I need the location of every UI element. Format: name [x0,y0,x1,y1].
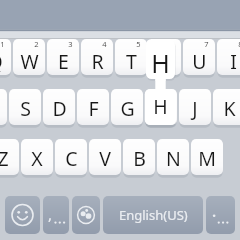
staticText: I [230,48,237,75]
staticText: 5 [136,39,141,49]
button[interactable]: A [0,89,7,127]
staticText: B [133,145,146,172]
button[interactable]: G [111,89,143,127]
button[interactable]: Comma and symbols [43,196,69,234]
button[interactable]: F [77,89,109,127]
staticText: 7 [204,39,209,49]
staticText: N [166,145,181,172]
staticText: Y [159,48,171,75]
button[interactable]: V [89,139,121,177]
button[interactable]: 6 [149,39,181,77]
staticText: English(US) [119,206,188,224]
staticText: 8 [238,39,240,49]
staticText: 2 [34,39,39,49]
staticText: G [120,95,135,122]
staticText: E [58,48,69,75]
staticText: F [88,95,99,122]
button[interactable]: H [145,89,177,127]
staticText: V [99,145,111,172]
button[interactable]: 8 [217,39,240,77]
button[interactable]: D [43,89,75,127]
staticText: R [91,48,104,75]
button[interactable]: C [55,139,87,177]
staticText: 3 [68,39,73,49]
button[interactable]: J [179,89,211,127]
staticText: U [192,48,207,75]
staticText: 4 [102,39,107,49]
staticText: , [48,204,53,224]
button[interactable]: Emoji [5,196,40,234]
staticText: 1 [0,39,5,49]
staticText: W [20,48,39,75]
staticText: T [126,48,137,75]
button[interactable]: Period and symbols [206,196,235,234]
other: Pressed key H [144,37,177,129]
staticText: K [223,95,236,122]
button[interactable]: B [123,139,155,177]
button[interactable]: 4 [81,39,113,77]
staticText: H [151,46,170,80]
staticText: D [52,95,67,122]
button[interactable]: 7 [183,39,215,77]
button[interactable]: N [157,139,189,177]
button[interactable]: 5 [115,39,147,77]
staticText: Z [0,145,9,172]
button[interactable]: K [213,89,240,127]
staticText: X [31,145,43,172]
staticText: M [198,145,216,172]
staticText: J [192,95,198,122]
button[interactable]: 1 [0,39,11,77]
button[interactable]: X [21,139,53,177]
button[interactable]: M [191,139,223,177]
staticText: Q [0,48,3,75]
button[interactable]: Z [0,139,19,177]
staticText: C [65,145,78,172]
button[interactable]: 3 [47,39,79,77]
staticText: H [154,95,169,122]
staticText: H [153,93,168,120]
button[interactable]: Change language [72,196,100,234]
button[interactable]: English(US) [103,196,203,234]
button[interactable]: S [9,89,41,127]
button[interactable]: 2 [13,39,45,77]
staticText: S [20,95,31,122]
